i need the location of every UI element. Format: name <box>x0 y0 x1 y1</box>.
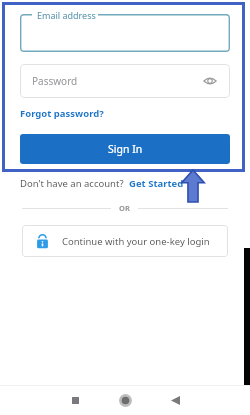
button[interactable]: Email address <box>20 14 230 52</box>
button[interactable]: Sign In <box>20 134 230 164</box>
staticText: OR <box>119 203 130 213</box>
button[interactable]: Back <box>158 386 192 415</box>
staticText: Password <box>32 74 202 88</box>
staticText: Continue with your one-key login <box>62 235 210 248</box>
button[interactable]: Continue with your one-key login <box>22 225 228 257</box>
staticText: Email address <box>37 9 96 21</box>
button[interactable]: Show password <box>202 73 218 89</box>
button[interactable]: Forgot password? <box>20 107 104 120</box>
button[interactable]: Home <box>108 386 142 415</box>
button[interactable]: Password <box>20 64 230 98</box>
staticText: Forgot password? <box>20 107 104 120</box>
staticText: Get Started <box>129 177 184 190</box>
staticText: Don't have an account? <box>20 177 124 190</box>
button[interactable]: Get Started <box>129 177 184 190</box>
button[interactable]: Recent apps <box>58 386 92 415</box>
staticText: Sign In <box>108 142 143 156</box>
